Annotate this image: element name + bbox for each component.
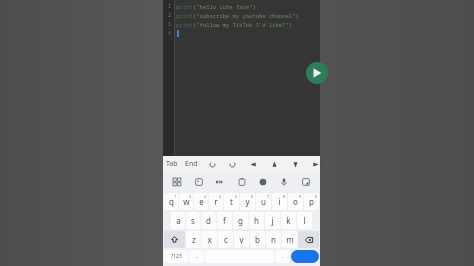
staticText: 9 — [299, 194, 302, 199]
button[interactable]: Redo — [227, 159, 237, 169]
button[interactable]: Undo — [207, 159, 217, 169]
button[interactable]: q — [164, 193, 178, 210]
button[interactable]: Tab — [166, 156, 178, 172]
staticText: 3 — [204, 194, 207, 199]
button[interactable]: b — [250, 231, 265, 248]
staticText: x — [207, 234, 212, 245]
staticText: b — [255, 234, 260, 245]
staticText: e — [199, 196, 204, 207]
staticText: 4 — [168, 30, 172, 37]
staticText: End — [185, 159, 198, 169]
button[interactable]: r — [209, 193, 223, 210]
staticText: Tab — [166, 159, 178, 169]
button[interactable]: Left — [248, 159, 258, 169]
button[interactable]: . — [275, 250, 290, 263]
button[interactable]: ?123 — [164, 250, 188, 263]
button[interactable]: a — [171, 212, 185, 229]
button[interactable]: Settings — [299, 175, 313, 189]
staticText: v — [239, 234, 244, 245]
button[interactable]: k — [281, 212, 296, 229]
staticText: y — [245, 196, 250, 207]
button[interactable]: Stickers — [192, 175, 206, 189]
button[interactable]: Up — [269, 159, 279, 169]
staticText: f — [223, 215, 226, 226]
staticText: h — [254, 215, 259, 226]
staticText: o — [293, 196, 298, 207]
staticText: j — [271, 215, 274, 226]
staticText: ?123 — [171, 253, 182, 260]
button[interactable]: Backspace — [298, 231, 319, 248]
staticText: n — [271, 234, 276, 245]
staticText: 4 — [219, 194, 222, 199]
staticText: 1 — [168, 3, 172, 10]
button[interactable]: o — [288, 193, 303, 210]
staticText: print — [176, 21, 193, 28]
button[interactable]: Shift — [164, 231, 185, 248]
staticText: 1 — [174, 194, 177, 199]
staticText: d — [206, 215, 211, 226]
button[interactable]: d — [201, 212, 216, 229]
button[interactable]: u — [256, 193, 271, 210]
button[interactable]: Voice input — [277, 175, 291, 189]
button[interactable]: w — [179, 193, 193, 210]
button[interactable]: n — [266, 231, 281, 248]
button[interactable]: Right — [311, 159, 320, 169]
staticText: ("follow my TikTok I'd like?") — [193, 21, 293, 28]
staticText: print — [176, 3, 193, 10]
button[interactable]: p — [304, 193, 319, 210]
staticText: i — [278, 196, 281, 207]
staticText: 8 — [283, 194, 286, 199]
button[interactable]: Keyboard modes — [170, 175, 184, 189]
button[interactable]: , — [189, 250, 204, 263]
staticText: q — [169, 196, 174, 207]
button[interactable]: l — [297, 212, 312, 229]
button[interactable]: e — [194, 193, 208, 210]
staticText: w — [183, 196, 190, 207]
staticText: u — [261, 196, 266, 207]
staticText: l — [303, 215, 306, 226]
button[interactable]: Down — [290, 159, 300, 169]
staticText: a — [176, 215, 181, 226]
button[interactable]: Clipboard — [235, 175, 249, 189]
button[interactable]: f — [217, 212, 232, 229]
staticText: print — [176, 12, 193, 19]
staticText: 3 — [168, 21, 172, 28]
button[interactable]: j — [265, 212, 280, 229]
button[interactable]: Run — [306, 62, 328, 84]
button[interactable]: z — [186, 231, 201, 248]
staticText: t — [230, 196, 233, 207]
button[interactable]: v — [234, 231, 249, 248]
button[interactable]: Enter — [291, 250, 319, 263]
staticText: 0 — [315, 194, 318, 199]
staticText: ("hello cute face") — [193, 3, 256, 10]
button[interactable]: m — [282, 231, 297, 248]
staticText: c — [224, 234, 228, 245]
staticText: r — [214, 196, 218, 207]
button[interactable]: g — [233, 212, 248, 229]
button[interactable]: End — [185, 156, 198, 172]
button[interactable]: c — [218, 231, 233, 248]
staticText: ("subscribe my youtube channel") — [193, 12, 299, 19]
staticText: . — [282, 253, 284, 260]
button[interactable]: t — [224, 193, 239, 210]
button[interactable]: y — [240, 193, 255, 210]
button[interactable]: Emoji — [256, 175, 270, 189]
staticText: 5 — [235, 194, 238, 199]
staticText: 7 — [267, 194, 270, 199]
staticText: m — [286, 234, 294, 245]
staticText: g — [238, 215, 243, 226]
staticText: k — [286, 215, 291, 226]
staticText: 2 — [189, 194, 192, 199]
staticText: z — [192, 234, 196, 245]
button[interactable]: h — [249, 212, 264, 229]
staticText: 2 — [168, 12, 172, 19]
staticText: , — [196, 253, 198, 260]
staticText: p — [309, 196, 314, 207]
button[interactable]: x — [202, 231, 217, 248]
button[interactable]: GIF — [213, 175, 227, 189]
button[interactable]: s — [186, 212, 200, 229]
staticText: 6 — [251, 194, 254, 199]
button[interactable]: i — [272, 193, 287, 210]
staticText: s — [191, 215, 195, 226]
